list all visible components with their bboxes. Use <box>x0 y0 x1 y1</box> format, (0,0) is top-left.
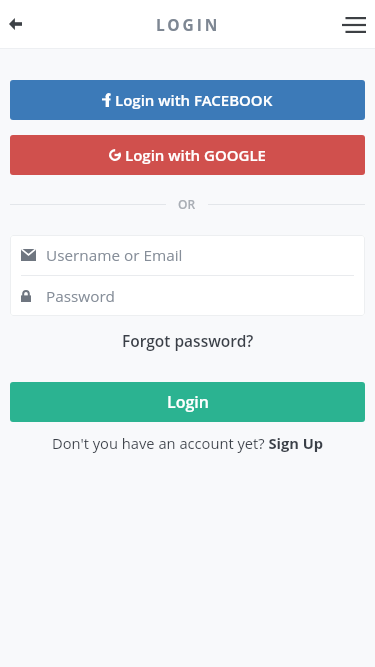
staticText: Login with GOOGLE <box>125 145 266 165</box>
button[interactable]: Login <box>10 382 365 422</box>
button[interactable]: Login with GOOGLE <box>10 135 365 175</box>
staticText: Username or Email <box>46 245 183 266</box>
button[interactable]: Username or Email <box>10 235 365 275</box>
button[interactable]: Password <box>10 276 365 316</box>
staticText: LOGIN <box>156 14 221 35</box>
button[interactable]: Back <box>0 1 38 49</box>
staticText: OR <box>178 196 196 212</box>
button[interactable]: Forgot password? <box>118 326 258 355</box>
staticText: Login <box>167 391 209 413</box>
staticText: Password <box>46 286 115 307</box>
button[interactable]: Menu <box>331 1 375 49</box>
button[interactable]: Don't you have an account yet? Sign Up <box>50 431 326 455</box>
button[interactable]: Login with FACEBOOK <box>10 80 365 120</box>
staticText: Login with FACEBOOK <box>115 90 273 110</box>
